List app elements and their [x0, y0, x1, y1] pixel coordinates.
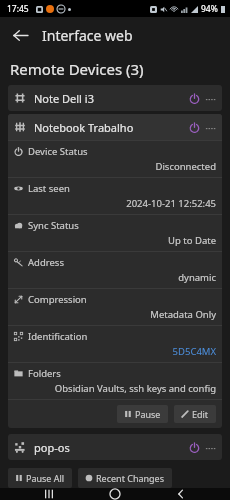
button[interactable]: Sync Status	[8, 214, 222, 251]
button[interactable]: Compression	[8, 288, 222, 325]
staticText: Remote Devices (3)	[10, 59, 144, 79]
staticText: Last seen	[28, 182, 70, 195]
staticText: Up to Date	[8, 234, 216, 247]
staticText: Sync Status	[28, 219, 79, 232]
staticText: Obsidian Vaults, ssh keys and config	[8, 382, 216, 395]
other: Toggle device	[189, 93, 200, 104]
staticText: 2024-10-21 12:52:45	[8, 197, 216, 210]
staticText: Notebook Trabalho	[34, 120, 134, 135]
staticText: 5D5C4MX	[8, 345, 216, 358]
button[interactable]: Note Dell i3	[8, 85, 222, 111]
staticText: Note Dell i3	[34, 91, 94, 106]
other: Toggle device	[189, 442, 200, 453]
other: More options	[205, 93, 216, 104]
other: Toggle device	[189, 122, 200, 133]
staticText: Edit	[192, 408, 209, 420]
staticText: Interface web	[42, 26, 133, 45]
other: More options	[205, 122, 216, 133]
button[interactable]: pop-os	[8, 434, 222, 460]
button[interactable]: Last seen	[8, 177, 222, 214]
button[interactable]: Identification	[8, 325, 222, 362]
button[interactable]: Pause All	[8, 468, 72, 488]
staticText: 94%	[201, 3, 218, 15]
staticText: Address	[28, 256, 64, 269]
button[interactable]: Recent apps	[32, 488, 66, 500]
button[interactable]: Recent Changes	[78, 468, 172, 488]
button[interactable]: Device Status	[8, 140, 222, 177]
button[interactable]: Pause	[117, 405, 168, 423]
button[interactable]: Back	[164, 488, 198, 500]
button[interactable]: Notebook Trabalho	[8, 114, 222, 140]
button[interactable]: Edit	[174, 405, 216, 423]
staticText: Identification	[28, 330, 88, 343]
button[interactable]: Folders	[8, 362, 222, 399]
button[interactable]: Back	[4, 19, 36, 51]
staticText: Compression	[28, 293, 87, 306]
staticText: Folders	[28, 367, 61, 380]
button[interactable]: Home	[98, 488, 132, 500]
staticText: Recent Changes	[96, 472, 165, 484]
staticText: 17:45	[7, 3, 29, 15]
staticText: Pause	[135, 408, 161, 420]
staticText: Device Status	[28, 145, 88, 158]
other: More options	[205, 442, 216, 453]
staticText: pop-os	[34, 440, 70, 455]
staticText: Disconnected	[8, 160, 216, 173]
button[interactable]: Address	[8, 251, 222, 288]
staticText: dynamic	[8, 271, 216, 284]
staticText: Pause All	[26, 472, 65, 484]
staticText: Metadata Only	[8, 308, 216, 321]
